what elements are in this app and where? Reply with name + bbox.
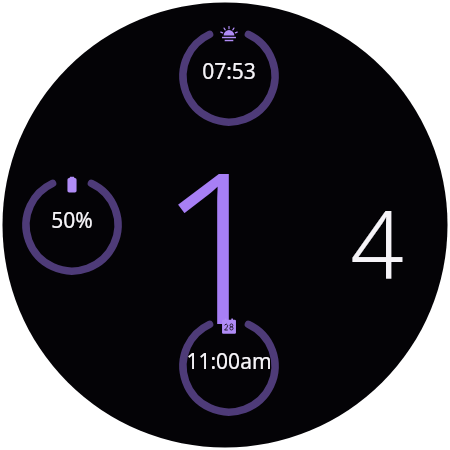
- staticText: 07:53: [202, 57, 256, 86]
- button[interactable]: Battery 50 percent: [19, 172, 125, 278]
- button[interactable]: 11: [112, 100, 324, 348]
- button[interactable]: Calendar event 11:00am: [176, 313, 282, 419]
- staticText: 11: [112, 100, 324, 348]
- button[interactable]: Sunrise time 07:53: [176, 23, 282, 129]
- staticText: 11:00am: [186, 347, 272, 376]
- button[interactable]: 40: [327, 180, 427, 280]
- staticText: 50%: [51, 206, 93, 235]
- staticText: 40: [327, 180, 427, 280]
